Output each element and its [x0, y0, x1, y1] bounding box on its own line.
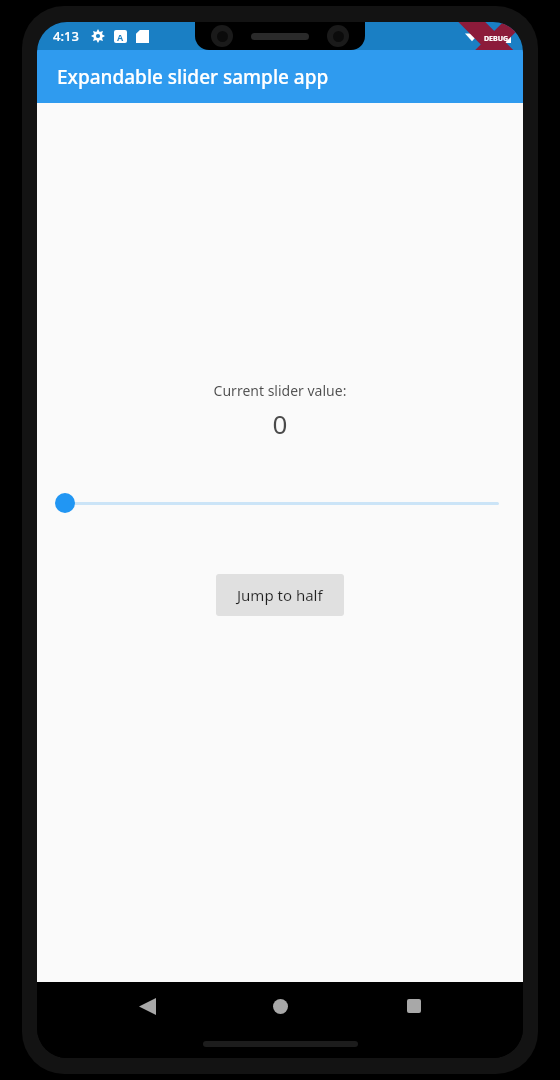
button[interactable]	[37, 487, 523, 519]
staticText: 0	[37, 406, 523, 441]
staticText: Jump to half	[237, 585, 323, 605]
button[interactable]: Back	[123, 982, 171, 1030]
staticText: Expandable slider sample app	[57, 64, 329, 90]
staticText: DEBUG	[484, 34, 509, 44]
staticText: A	[117, 31, 124, 43]
button[interactable]: Jump to half	[216, 574, 344, 616]
button[interactable]: Home	[256, 982, 304, 1030]
staticText: 4:13	[53, 27, 79, 45]
staticText: Current slider value:	[37, 381, 523, 400]
button[interactable]: Recent apps	[390, 982, 438, 1030]
